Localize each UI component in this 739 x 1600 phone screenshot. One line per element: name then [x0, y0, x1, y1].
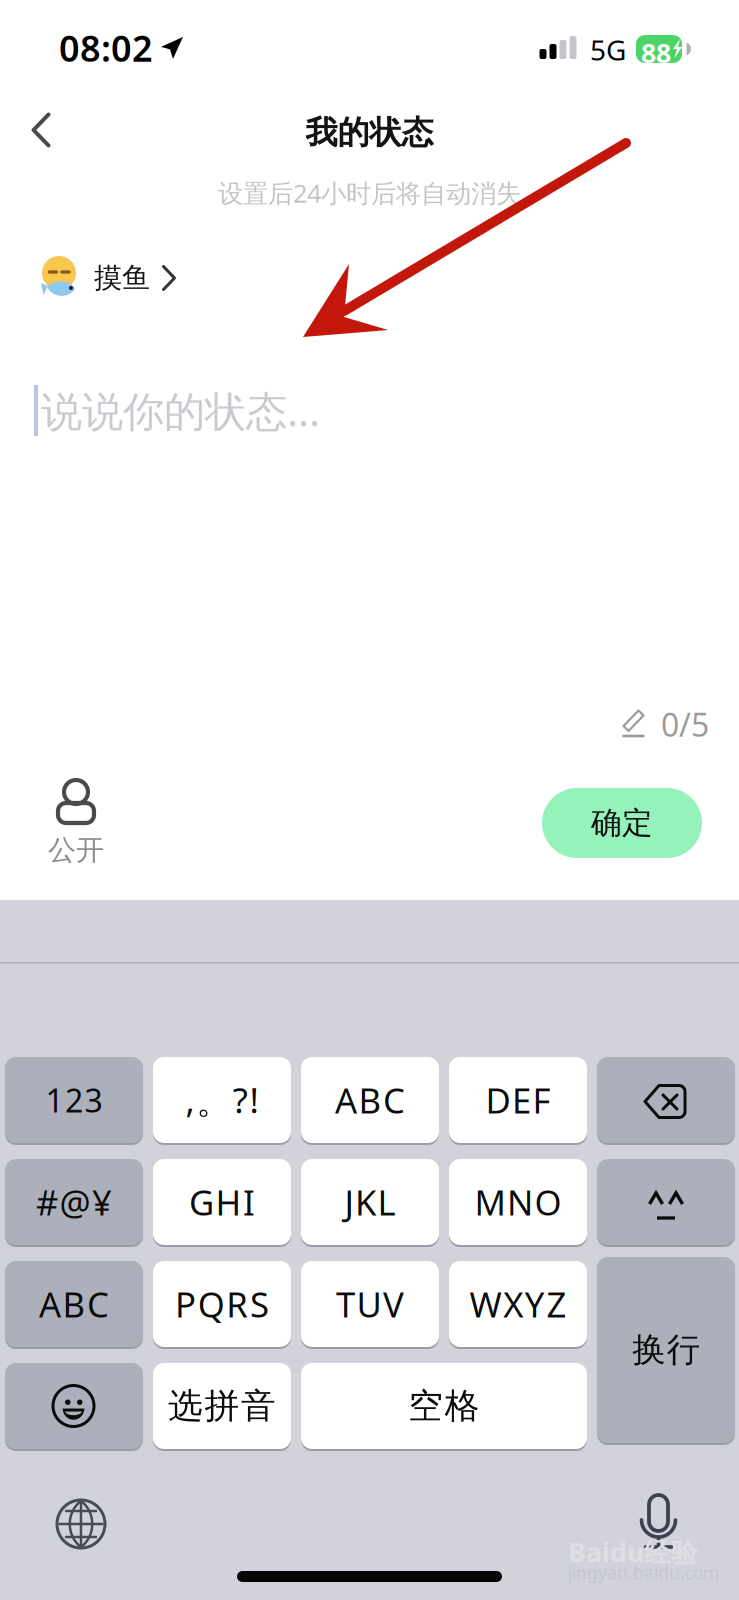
staticText: 我的状态 [305, 113, 433, 152]
staticText: ABC [39, 1281, 109, 1327]
staticText: 88 [641, 35, 671, 70]
staticText: 换行 [632, 1329, 700, 1370]
staticText: 08:02 [59, 24, 153, 72]
staticText: WXYZ [470, 1281, 566, 1327]
staticText: 123 [45, 1079, 103, 1121]
staticText: 0/5 [661, 703, 709, 745]
button[interactable]: Back [5, 100, 77, 160]
button[interactable]: JKL [301, 1159, 439, 1247]
staticText: 5G [590, 31, 626, 68]
button[interactable]: DEF [449, 1057, 587, 1145]
button[interactable]: PQRS [153, 1261, 291, 1349]
staticText: DEF [485, 1077, 551, 1123]
button[interactable]: Delete [597, 1057, 735, 1145]
button[interactable]: ,。?! [153, 1057, 291, 1145]
button[interactable]: Dictation [640, 1495, 678, 1550]
button[interactable]: 123 [5, 1057, 143, 1145]
staticText: TUV [336, 1281, 404, 1327]
button[interactable]: ABC [301, 1057, 439, 1145]
button[interactable]: 确定 [542, 788, 702, 858]
staticText: 选拼音 [168, 1385, 276, 1427]
staticText: 公开 [48, 833, 104, 867]
button[interactable]: Switch keyboard [56, 1499, 106, 1549]
staticText: PQRS [175, 1281, 269, 1327]
button[interactable]: Kaomoji [597, 1159, 735, 1247]
staticText: 说说你的状态... [41, 383, 320, 438]
button[interactable]: MNO [449, 1159, 587, 1247]
button[interactable]: 公开 [48, 779, 104, 867]
button[interactable]: WXYZ [449, 1261, 587, 1349]
staticText: #@¥ [36, 1179, 112, 1225]
staticText: ABC [335, 1077, 405, 1123]
staticText: 空格 [408, 1385, 480, 1427]
staticText: 摸鱼 [94, 261, 150, 295]
staticText: ,。?! [186, 1077, 258, 1123]
staticText: MNO [474, 1179, 562, 1225]
staticText: jingyan.baidu.com [568, 1561, 719, 1584]
staticText: 设置后24小时后将自动消失 [218, 176, 521, 210]
staticText: 确定 [591, 804, 653, 842]
button[interactable]: ABC [5, 1261, 143, 1349]
button[interactable]: GHI [153, 1159, 291, 1247]
button[interactable]: #@¥ [5, 1159, 143, 1247]
staticText: Baidu经验 [568, 1534, 698, 1570]
button[interactable]: 换行 [597, 1257, 735, 1445]
button[interactable]: 空格 [301, 1363, 587, 1451]
button[interactable]: 选拼音 [153, 1363, 291, 1451]
button[interactable]: 摸鱼 [40, 256, 176, 300]
staticText: JKL [344, 1179, 396, 1225]
button[interactable]: Emoji [5, 1363, 143, 1451]
button[interactable]: TUV [301, 1261, 439, 1349]
staticText: GHI [189, 1179, 255, 1225]
